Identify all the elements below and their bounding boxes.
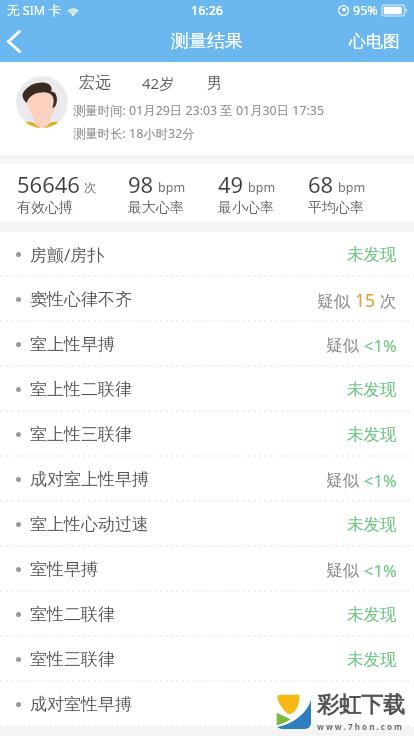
staticText: 15 [355, 288, 376, 312]
staticText: 室上性心动过速 [30, 514, 149, 535]
staticText: 宏远 [79, 73, 111, 93]
button[interactable]: 室性三联律 [0, 637, 414, 682]
staticText: 心电图 [349, 31, 400, 52]
staticText: <1% [364, 469, 397, 491]
staticText: bpm [158, 179, 186, 196]
staticText: 最大心率 [128, 199, 184, 217]
staticText: 次 [84, 180, 97, 196]
staticText: <1% [364, 334, 397, 356]
staticText: 室性三联律 [30, 649, 115, 670]
staticText: 98 [128, 169, 154, 199]
staticText: bpm [338, 179, 366, 196]
staticText: w w w . 7 h o n . c o m [317, 721, 402, 732]
button[interactable]: 成对室上性早搏 [0, 457, 414, 502]
staticText: 未发现 [347, 379, 397, 400]
button[interactable]: 房颤/房扑 [0, 232, 414, 277]
staticText: 未发现 [347, 604, 397, 625]
button[interactable]: 窦性心律不齐 [0, 277, 414, 322]
staticText: 测量时长: 18小时32分 [73, 125, 195, 142]
staticText: 未发现 [347, 244, 397, 265]
staticText: 测量结果 [171, 30, 243, 53]
button[interactable]: 室上性心动过速 [0, 502, 414, 547]
staticText: 无 SIM 卡 [7, 2, 61, 19]
staticText: 次 [380, 291, 397, 312]
button[interactable]: 心电图 [349, 31, 400, 52]
button[interactable]: 室上性二联律 [0, 367, 414, 412]
staticText: 室上性二联律 [30, 379, 132, 400]
staticText: 56646 [17, 169, 80, 199]
staticText: 平均心率 [308, 199, 364, 217]
staticText: 42岁 [142, 73, 175, 93]
button[interactable]: Back [0, 20, 36, 62]
button[interactable]: 室性早搏 [0, 547, 414, 592]
staticText: 16:26 [191, 2, 224, 19]
staticText: bpm [248, 179, 276, 196]
staticText: 疑似 [326, 470, 359, 491]
button[interactable]: 成对室性早搏 [0, 682, 414, 727]
staticText: 房颤/房扑 [30, 243, 105, 266]
staticText: 68 [308, 169, 334, 199]
staticText: 49 [218, 169, 244, 199]
staticText: 疑似 [317, 291, 350, 312]
staticText: 疑似 [326, 335, 359, 356]
button[interactable]: 室上性早搏 [0, 322, 414, 367]
staticText: 室上性早搏 [30, 334, 115, 355]
staticText: 未发现 [347, 514, 397, 535]
staticText: 室性早搏 [30, 559, 98, 580]
staticText: 测量时间: 01月29日 23:03 至 01月30日 17:35 [73, 102, 324, 119]
staticText: 未发现 [347, 424, 397, 445]
staticText: 男 [207, 73, 223, 93]
staticText: 成对室上性早搏 [30, 469, 149, 490]
staticText: 室上性三联律 [30, 424, 132, 445]
staticText: <1% [364, 559, 397, 581]
staticText: 室性二联律 [30, 604, 115, 625]
staticText: 疑似 [326, 560, 359, 581]
staticText: 最小心率 [218, 199, 274, 217]
staticText: 彩虹下载 [317, 691, 405, 719]
staticText: 成对室性早搏 [30, 694, 132, 715]
staticText: 窦性心律不齐 [30, 289, 132, 310]
button[interactable]: 室上性三联律 [0, 412, 414, 457]
staticText: 有效心搏 [17, 199, 73, 217]
staticText: 95% [353, 2, 378, 19]
button[interactable]: 室性二联律 [0, 592, 414, 637]
staticText: 未发现 [347, 649, 397, 670]
